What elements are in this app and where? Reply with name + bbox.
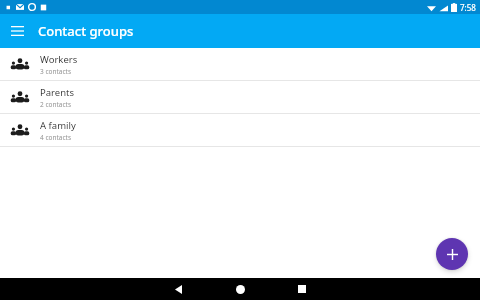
staticText: 4 contacts	[40, 133, 72, 142]
staticText: 7:58	[460, 2, 476, 13]
button[interactable]: Home	[218, 278, 262, 300]
staticText: Workers	[40, 53, 78, 66]
staticText: 2 contacts	[40, 100, 72, 109]
button[interactable]: Workers	[0, 48, 480, 80]
button[interactable]: Create new contact group	[436, 238, 468, 270]
staticText: A family	[40, 119, 76, 132]
button[interactable]: A family	[0, 114, 480, 146]
staticText: Parents	[40, 86, 75, 99]
button[interactable]: Open navigation drawer	[0, 14, 34, 48]
button[interactable]: Parents	[0, 81, 480, 113]
staticText: Contact groups	[38, 22, 134, 40]
button[interactable]: Recent apps	[280, 278, 324, 300]
staticText: 3 contacts	[40, 67, 72, 76]
button[interactable]: Back	[156, 278, 200, 300]
